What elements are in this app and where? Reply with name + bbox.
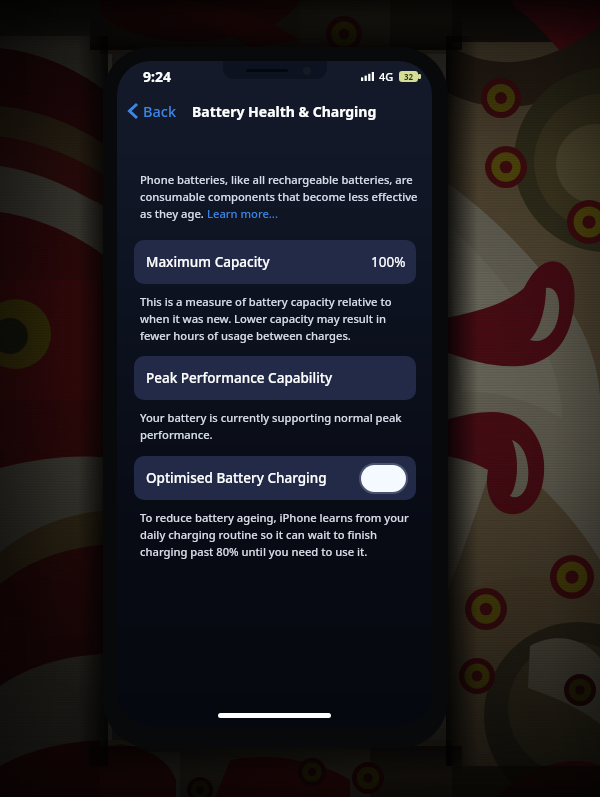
staticText: Phone batteries, like all rechargeable b… [140, 172, 413, 187]
staticText: Optimised Battery Charging [146, 469, 327, 487]
button[interactable]: Back [124, 97, 181, 125]
button[interactable]: Optimised Battery Charging [134, 456, 416, 500]
staticText: daily charging routine so it can wait to… [140, 527, 377, 542]
staticText: consumable components that become less e… [140, 189, 418, 204]
button[interactable]: Peak Performance Capability [134, 356, 416, 400]
staticText: Back [143, 101, 177, 121]
staticText: 100% [371, 253, 406, 271]
button[interactable]: Maximum Capacity [134, 240, 416, 284]
staticText: Battery Health & Charging [192, 102, 377, 121]
staticText: as they age. [140, 206, 207, 221]
staticText: 32 [404, 71, 414, 82]
button[interactable]: as they age. [140, 206, 278, 221]
button[interactable]: Optimised Battery Charging toggle, on [361, 465, 406, 492]
staticText: Your battery is currently supporting nor… [140, 410, 402, 425]
staticText: Maximum Capacity [146, 253, 270, 271]
staticText: charging past 80% until you need to use … [140, 544, 368, 559]
staticText: To reduce battery ageing, iPhone learns … [140, 510, 409, 525]
staticText: Learn more... [207, 206, 278, 221]
staticText: fewer hours of usage between charges. [140, 328, 351, 343]
staticText: 9:24 [143, 67, 171, 86]
staticText: 4G [379, 69, 394, 84]
staticText: performance. [140, 427, 213, 442]
staticText: when it was new. Lower capacity may resu… [140, 311, 387, 326]
staticText: This is a measure of battery capacity re… [140, 294, 392, 309]
staticText: Peak Performance Capability [146, 369, 333, 387]
